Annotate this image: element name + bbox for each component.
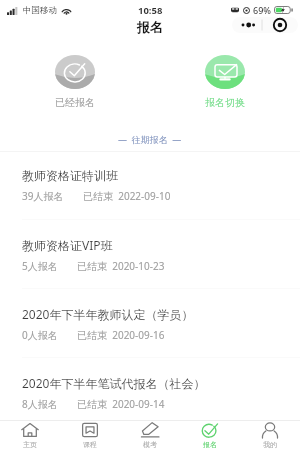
staticText: 课程 <box>83 440 97 449</box>
staticText: 已结束 2020-09-16 <box>77 328 165 342</box>
staticText: 8人报名 <box>22 397 58 411</box>
staticText: 中国移动 <box>23 5 57 16</box>
button[interactable]: 已经报名 <box>0 55 150 109</box>
staticText: 主页 <box>23 440 37 449</box>
staticText: 已结束 2022-09-10 <box>83 189 171 203</box>
staticText: 报名 <box>203 440 217 449</box>
staticText: 报名 <box>137 19 163 35</box>
staticText: 69% <box>253 4 271 16</box>
button[interactable]: 课程 <box>60 421 120 450</box>
staticText: 2020年下半年教师认定（学员） <box>22 306 194 322</box>
button[interactable]: 教师资格证VIP班 <box>0 220 300 289</box>
staticText: 5人报名 <box>22 259 58 273</box>
button[interactable]: 教师资格证特训班 <box>0 151 300 220</box>
button[interactable]: 模考 <box>120 421 180 450</box>
button[interactable]: 我的 <box>240 421 300 450</box>
staticText: 0人报名 <box>22 328 58 342</box>
staticText: 已结束 2020-10-23 <box>77 259 165 273</box>
staticText: 2020年下半年笔试代报名（社会） <box>22 375 206 391</box>
staticText: 模考 <box>143 440 157 449</box>
button[interactable]: 报名切换 <box>150 55 300 109</box>
staticText: 报名切换 <box>205 96 245 109</box>
staticText: 39人报名 <box>22 189 64 203</box>
staticText: 教师资格证特训班 <box>22 168 118 183</box>
button[interactable]: 报名 <box>180 421 240 450</box>
button[interactable]: 主页 <box>0 421 60 450</box>
staticText: 已结束 2020-09-14 <box>77 397 165 411</box>
staticText: — 往期报名 — <box>118 133 182 145</box>
staticText: 教师资格证VIP班 <box>22 237 113 253</box>
button[interactable]: Mini program menu <box>232 17 298 33</box>
staticText: 已经报名 <box>55 96 95 109</box>
staticText: 10:58 <box>138 4 163 17</box>
button[interactable]: 2020年下半年教师认定（学员） <box>0 289 300 358</box>
staticText: 我的 <box>263 440 277 449</box>
button[interactable]: 2020年下半年笔试代报名（社会） <box>0 358 300 427</box>
